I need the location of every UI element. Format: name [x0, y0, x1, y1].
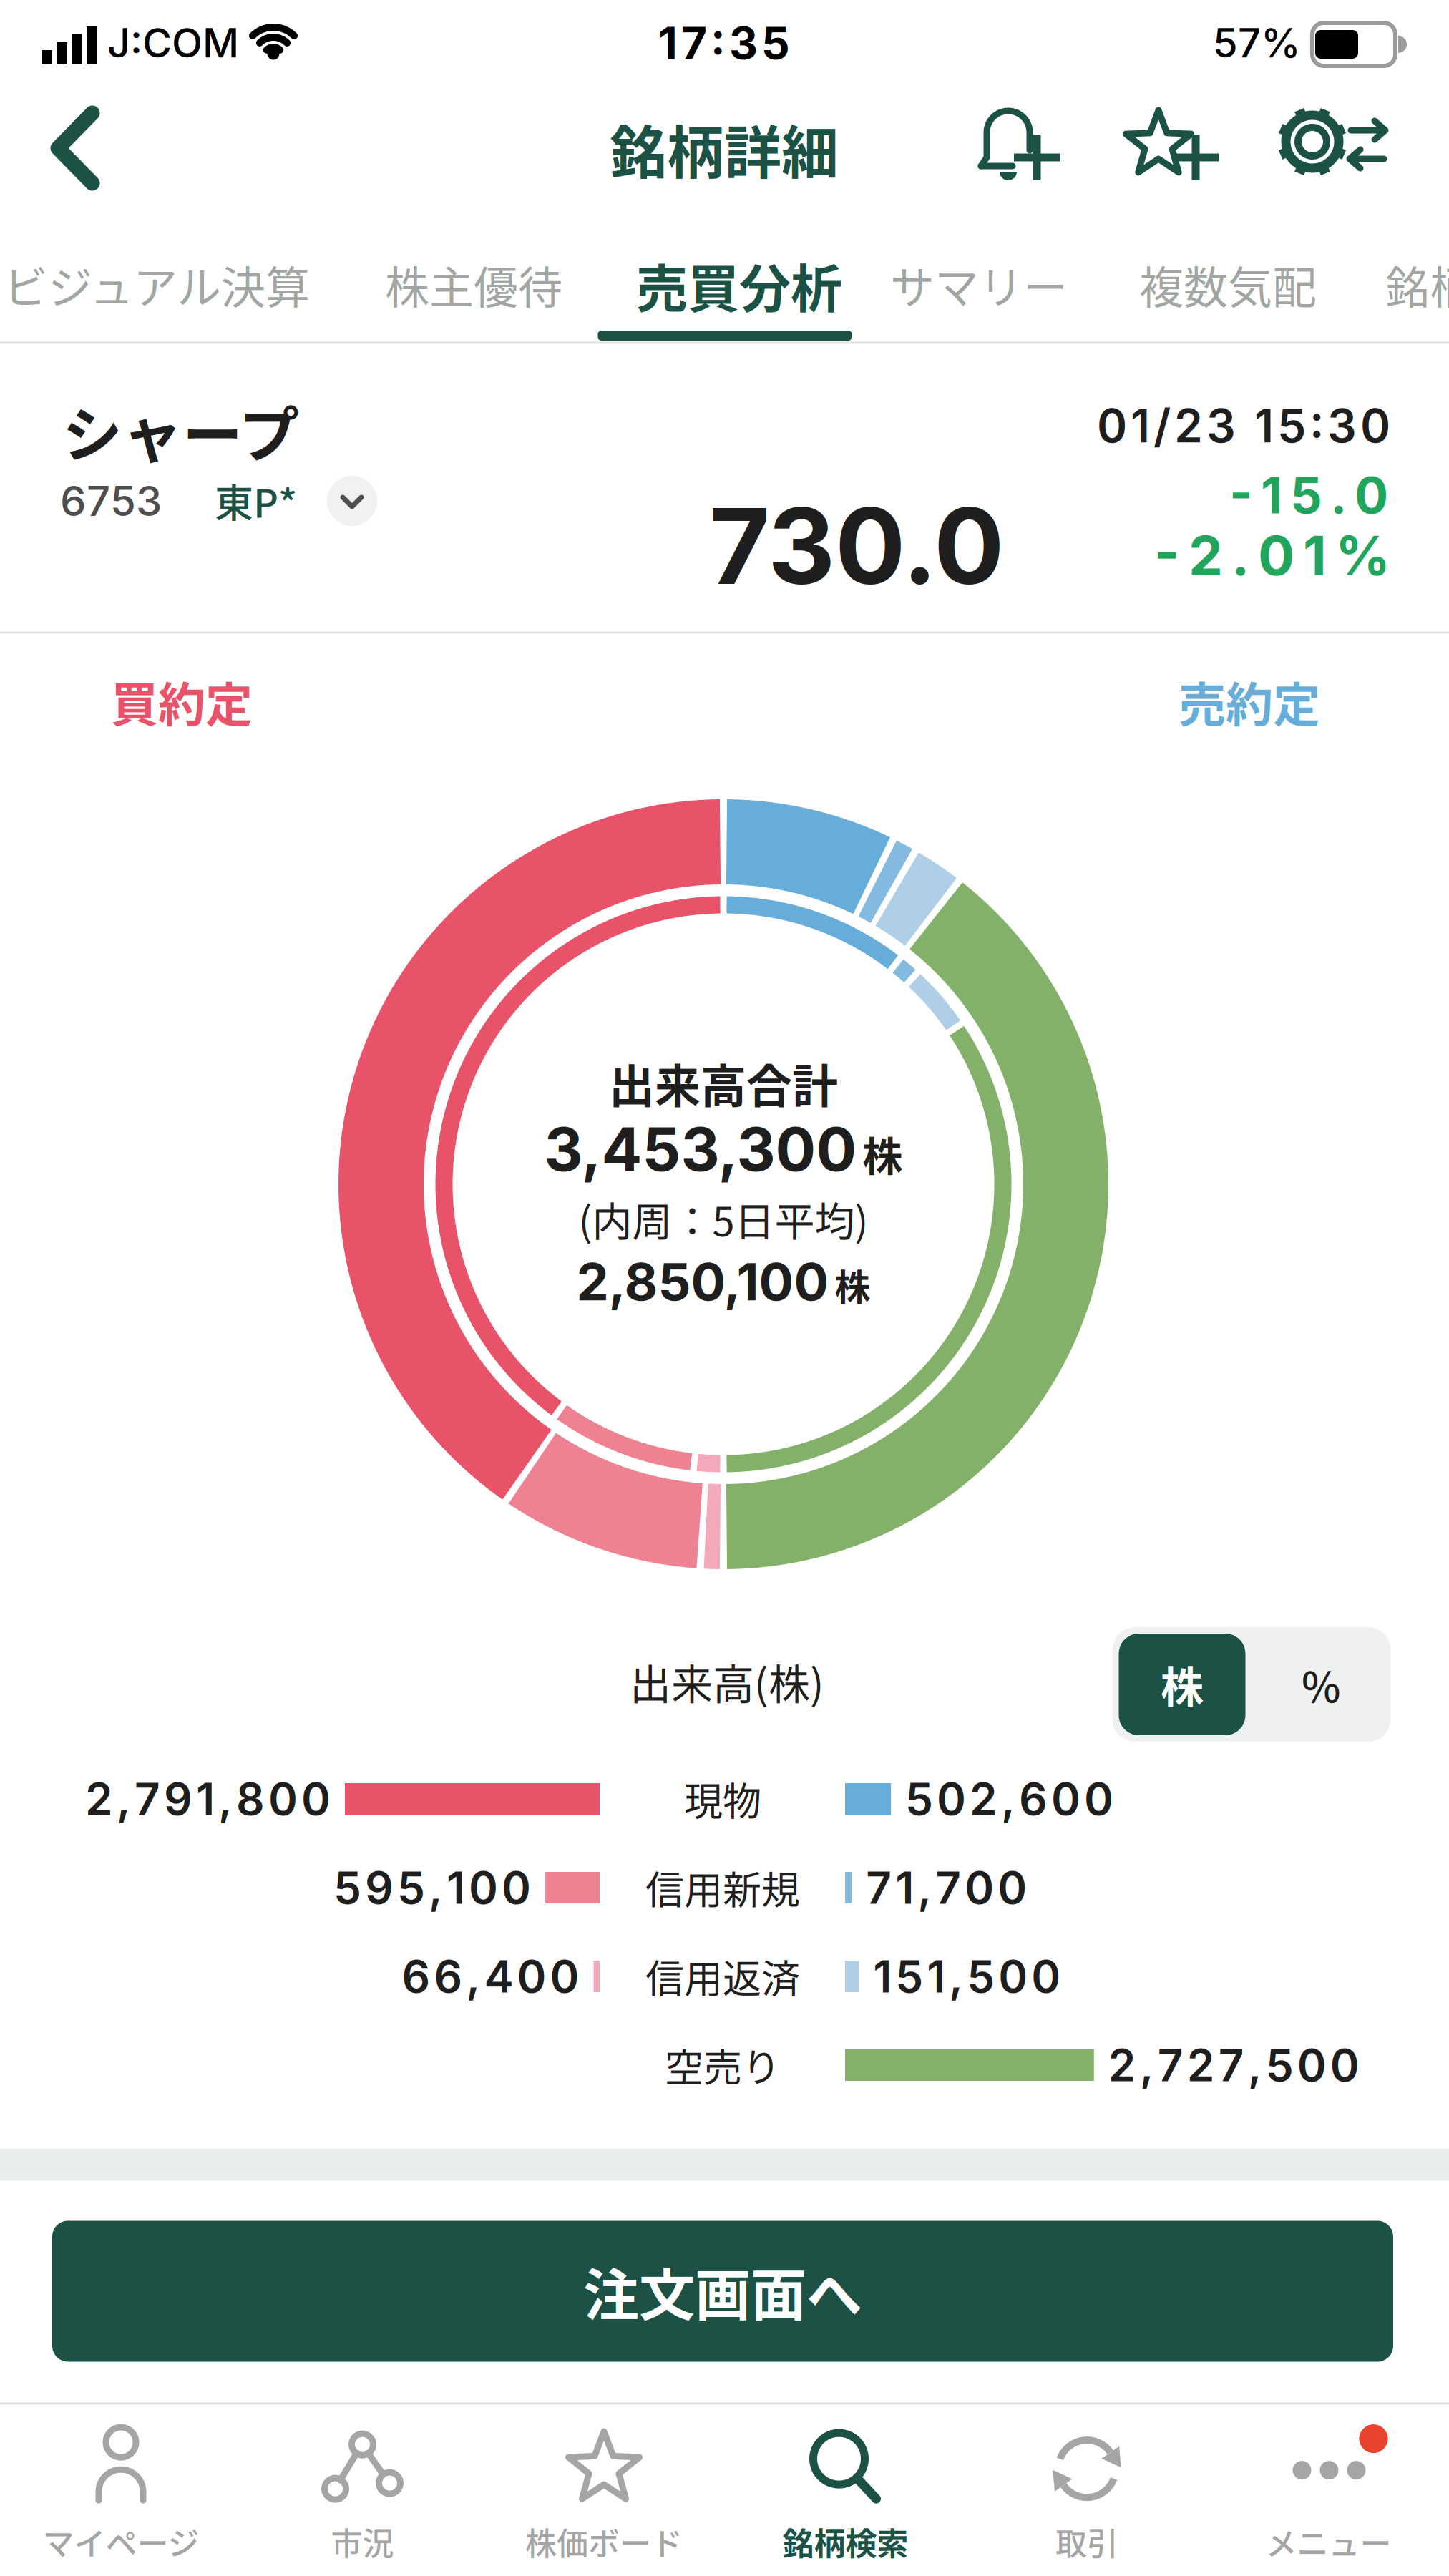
staticText: 取引 — [1055, 2519, 1118, 2564]
button[interactable]: 取引 — [969, 2419, 1205, 2569]
staticText: 空売り — [665, 2037, 781, 2093]
staticText: 57% — [1213, 19, 1301, 67]
button[interactable]: 市場切替 — [327, 476, 377, 526]
staticText: 5 9 5 , 1 0 0 — [334, 1861, 531, 1914]
button[interactable]: 設定 — [1275, 100, 1390, 193]
staticText: 銘柄一覧 — [1385, 253, 1449, 317]
staticText: J:COM — [107, 19, 239, 67]
staticText: 株主優待 — [385, 253, 562, 317]
staticText: 東P* — [215, 473, 297, 529]
staticText: 株価ボード — [525, 2519, 683, 2564]
staticText: 1 7 : 3 5 — [658, 16, 790, 70]
staticText: 株 — [835, 1259, 870, 1311]
button[interactable]: マイページ — [3, 2419, 239, 2569]
staticText: 1 5 1 , 5 0 0 — [873, 1950, 1061, 2003]
button[interactable]: 市況 — [244, 2419, 480, 2569]
staticText: 売約定 — [1179, 667, 1320, 735]
staticText: 現物 — [684, 1771, 761, 1827]
button[interactable]: 売買分析 — [621, 242, 857, 328]
staticText: - 1 5 . 0 — [1229, 465, 1388, 526]
button[interactable]: お気に入り追加 — [1121, 100, 1229, 193]
staticText: 出来高(株) — [630, 1652, 824, 1712]
staticText: % — [1302, 1654, 1340, 1714]
staticText: 0 1 / 2 3 1 5 : 3 0 — [1097, 398, 1390, 453]
staticText: 信用返済 — [645, 1948, 800, 2004]
staticText: 5 0 2 , 6 0 0 — [905, 1772, 1113, 1826]
staticText: 3,453,300 — [544, 1113, 857, 1186]
staticText: 出来高合計 — [609, 1050, 838, 1116]
staticText: 買約定 — [111, 667, 253, 735]
staticText: 7 1 , 7 0 0 — [866, 1861, 1027, 1914]
staticText: 注文画面へ — [583, 2251, 862, 2332]
staticText: 銘柄検索 — [782, 2519, 908, 2564]
button[interactable]: 複数気配 — [1121, 242, 1335, 328]
button[interactable]: 戻る — [39, 97, 140, 199]
button[interactable]: 銘柄検索 — [727, 2419, 963, 2569]
staticText: 2,850,100 — [576, 1250, 829, 1313]
staticText: 6 6 , 4 0 0 — [402, 1950, 579, 2003]
staticText: 2 , 7 2 7 , 5 0 0 — [1108, 2038, 1359, 2092]
button[interactable]: 注文画面へ — [52, 2221, 1393, 2362]
staticText: 市況 — [331, 2519, 394, 2564]
button[interactable]: 株価ボード — [486, 2419, 722, 2569]
staticText: 株 — [863, 1125, 903, 1183]
staticText: - 2 . 0 1 % — [1154, 522, 1390, 588]
button[interactable]: メニュー — [1210, 2419, 1446, 2569]
staticText: メニュー — [1265, 2519, 1391, 2564]
button[interactable]: 銘柄一覧 — [1367, 242, 1449, 328]
staticText: サマリー — [890, 253, 1068, 317]
staticText: 複数気配 — [1139, 253, 1317, 317]
button[interactable]: 株主優待 — [366, 242, 581, 328]
staticText: マイページ — [43, 2519, 199, 2564]
button[interactable]: % — [1257, 1634, 1385, 1735]
staticText: 株 — [1161, 1653, 1204, 1716]
staticText: 6753 — [60, 476, 162, 526]
staticText: 銘柄詳細 — [610, 107, 839, 190]
staticText: シャープ — [62, 387, 299, 474]
staticText: 2 , 7 9 1 , 8 0 0 — [85, 1772, 331, 1826]
button[interactable]: アラート追加 — [968, 100, 1075, 193]
button[interactable]: サマリー — [872, 242, 1086, 328]
button[interactable]: 株 — [1119, 1634, 1245, 1735]
staticText: ビジュアル決算 — [4, 253, 310, 317]
staticText: (内周：5日平均) — [579, 1190, 868, 1248]
staticText: 売買分析 — [636, 248, 842, 322]
staticText: 信用新規 — [645, 1860, 800, 1916]
staticText: 730.0 — [709, 483, 1004, 609]
button[interactable]: ビジュアル決算 — [0, 242, 325, 328]
